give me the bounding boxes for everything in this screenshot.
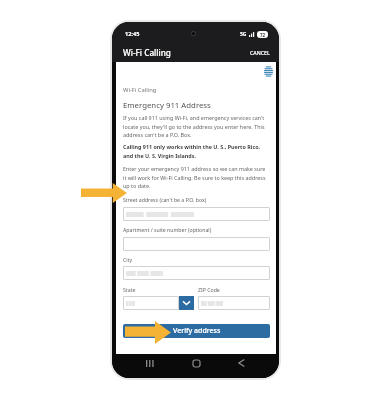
button[interactable]: Select state (179, 296, 194, 310)
staticText: Verify address (173, 326, 221, 336)
staticText: 12:45 (125, 30, 140, 38)
staticText: Calling 911 only works within the U. S.,… (123, 143, 270, 159)
button[interactable] (123, 266, 270, 280)
staticText: City (123, 256, 133, 263)
button[interactable]: Recents (143, 356, 157, 370)
staticText: 72 (260, 32, 266, 38)
button[interactable] (123, 237, 270, 251)
staticText: Wi-Fi Calling (123, 86, 157, 94)
button[interactable]: Home (189, 356, 203, 370)
staticText: ZIP Code (198, 286, 220, 293)
staticText: State (123, 286, 136, 293)
staticText: 5G (240, 31, 247, 38)
button[interactable]: Verify address (123, 324, 270, 338)
button[interactable]: CANCEL (241, 44, 279, 61)
button[interactable] (123, 207, 270, 221)
staticText: Apartment / suite number (optional) (123, 226, 212, 233)
button[interactable] (123, 296, 179, 310)
staticText: Street address (can't be a P.O. box) (123, 196, 207, 203)
staticText: Enter your emergency 911 address so we c… (123, 165, 270, 189)
staticText: Emergency 911 Address (123, 100, 211, 111)
staticText: If you call 911 using Wi-Fi, and emergen… (123, 114, 270, 138)
staticText: CANCEL (250, 49, 270, 56)
button[interactable]: Back (234, 356, 248, 370)
staticText: Wi-Fi Calling (123, 47, 171, 58)
button[interactable] (198, 296, 270, 310)
